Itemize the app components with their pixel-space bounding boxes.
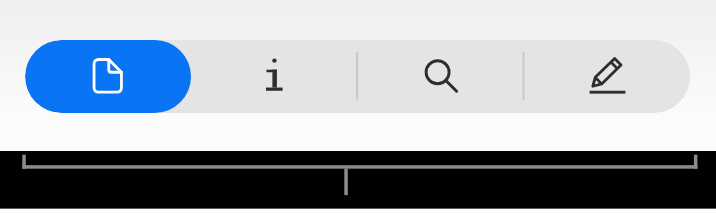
button[interactable]: Document [25,40,191,113]
button[interactable]: Edit [523,40,689,113]
button[interactable]: Search [357,40,523,113]
button[interactable]: Info [191,40,357,113]
